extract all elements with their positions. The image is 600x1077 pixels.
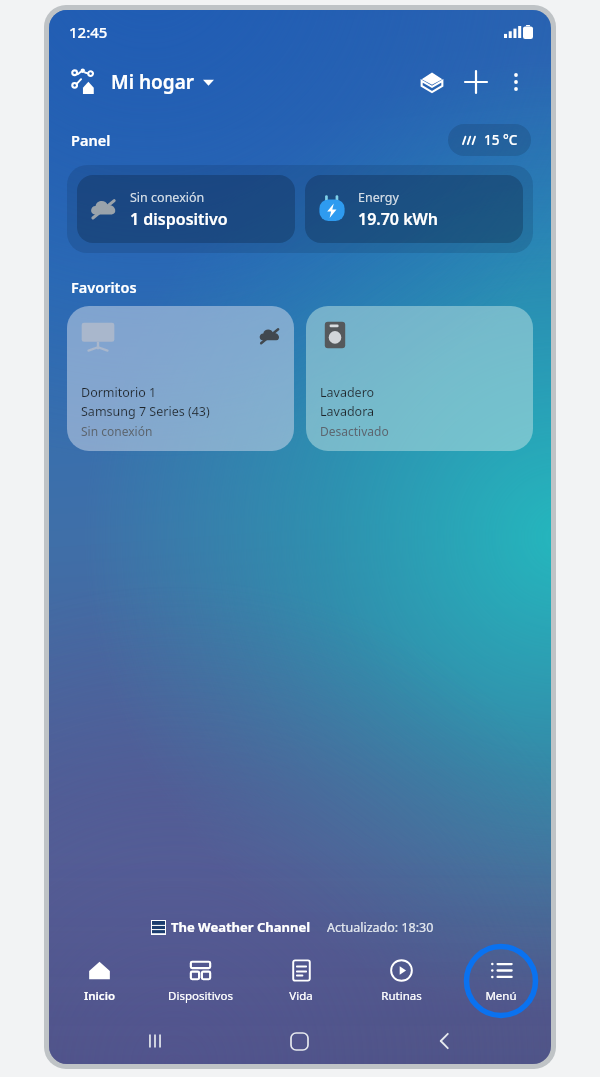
staticText: Actualizado: 18:30 [327,919,434,936]
button[interactable]: Dormitorio 1 [67,306,294,451]
staticText: The Weather Channel [171,918,311,936]
staticText: Dispositivos [168,988,233,1004]
staticText: Panel [71,130,111,150]
staticText: Rutinas [381,988,422,1004]
staticText: Desactivado [320,423,389,439]
staticText: 15 °C [484,131,518,149]
button[interactable]: Mi hogar [69,64,216,100]
button[interactable]: Energy [305,175,523,243]
staticText: Menú [485,988,517,1004]
button[interactable]: 3D view [413,63,451,101]
staticText: Energy [358,189,399,206]
button[interactable]: More options [497,63,535,101]
button[interactable]: Vida [251,953,351,1010]
button[interactable]: Menú [485,953,517,1010]
button[interactable]: Dispositivos [150,953,251,1010]
staticText: Dormitorio 1 [81,384,157,401]
staticText: Lavadero [320,384,375,401]
staticText: Mi hogar [111,69,195,95]
staticText: 1 dispositivo [130,208,228,230]
staticText: Vida [289,988,313,1004]
button[interactable]: Offline devices [77,175,295,243]
staticText: 12:45 [69,22,108,42]
staticText: Lavadora [320,403,375,420]
staticText: Samsung 7 Series (43) [81,403,210,420]
staticText: 19.70 kWh [358,208,439,230]
button[interactable]: Add [457,63,495,101]
staticText: Inicio [84,988,115,1004]
staticText: Sin conexión [81,423,153,439]
button[interactable]: 15 °C [448,124,531,156]
staticText: Favoritos [71,277,137,297]
staticText: Sin conexión [130,189,205,206]
button[interactable]: Inicio [49,953,150,1010]
button[interactable]: Rutinas [351,953,451,1010]
button[interactable]: Lavadero [306,306,533,451]
